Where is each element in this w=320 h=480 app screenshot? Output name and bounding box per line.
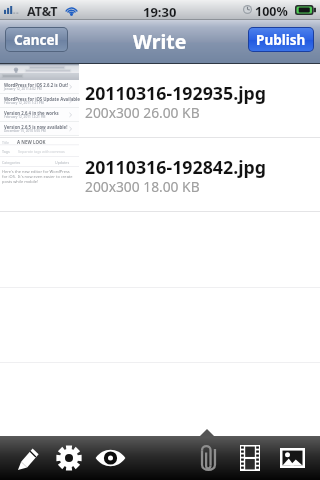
staticText: Separate tags with commas [18, 149, 65, 154]
staticText: Here's the new editor for WordPress for … [2, 169, 74, 184]
staticText: February 12, 2011 12:21 PM [4, 115, 46, 119]
button[interactable]: Settings [50, 437, 88, 479]
staticText: Cancel [14, 31, 59, 49]
staticText: Title [2, 140, 9, 145]
staticText: January 12, 2011 4:02 PM [4, 87, 42, 91]
staticText: WordPress for iOS 2.6.2 is Out! [4, 82, 69, 88]
staticText: Publish [256, 31, 306, 49]
staticText: A NEW LOOK [17, 139, 46, 145]
staticText: 19:30 [143, 3, 177, 21]
staticText: Write [133, 28, 187, 55]
staticText: AT&T [27, 3, 58, 20]
button[interactable]: Add video [231, 437, 269, 479]
button[interactable]: 20110316-192842.jpg [0, 138, 320, 212]
staticText: Version 2.6.4 in the works [4, 110, 59, 116]
staticText: 20110316-192935.jpg [85, 81, 267, 105]
staticText: 20110316-192842.jpg [85, 155, 267, 179]
button[interactable]: Add attachment [189, 437, 227, 479]
staticText: Categories [2, 160, 21, 165]
staticText: WordPress for iOS Update Available [4, 96, 80, 102]
button[interactable]: Edit post [9, 437, 47, 479]
button[interactable]: Add photo [273, 437, 311, 479]
staticText: Updates [55, 160, 70, 165]
button[interactable]: Cancel [6, 28, 67, 51]
button[interactable]: 20110316-192935.jpg [0, 64, 320, 138]
staticText: December 15, 2010 5:55 PM [4, 129, 46, 133]
staticText: 100% [255, 3, 288, 20]
staticText: 200x300 26.00 KB [85, 103, 200, 122]
staticText: 200x300 18.00 KB [85, 177, 200, 196]
staticText: Tags [2, 149, 10, 154]
staticText: February 12, 2011 1:21 PM [4, 101, 44, 105]
button[interactable]: Preview [91, 437, 129, 479]
button[interactable]: Publish [249, 28, 313, 51]
staticText: Version 2.6.5 is now available! [4, 124, 68, 130]
